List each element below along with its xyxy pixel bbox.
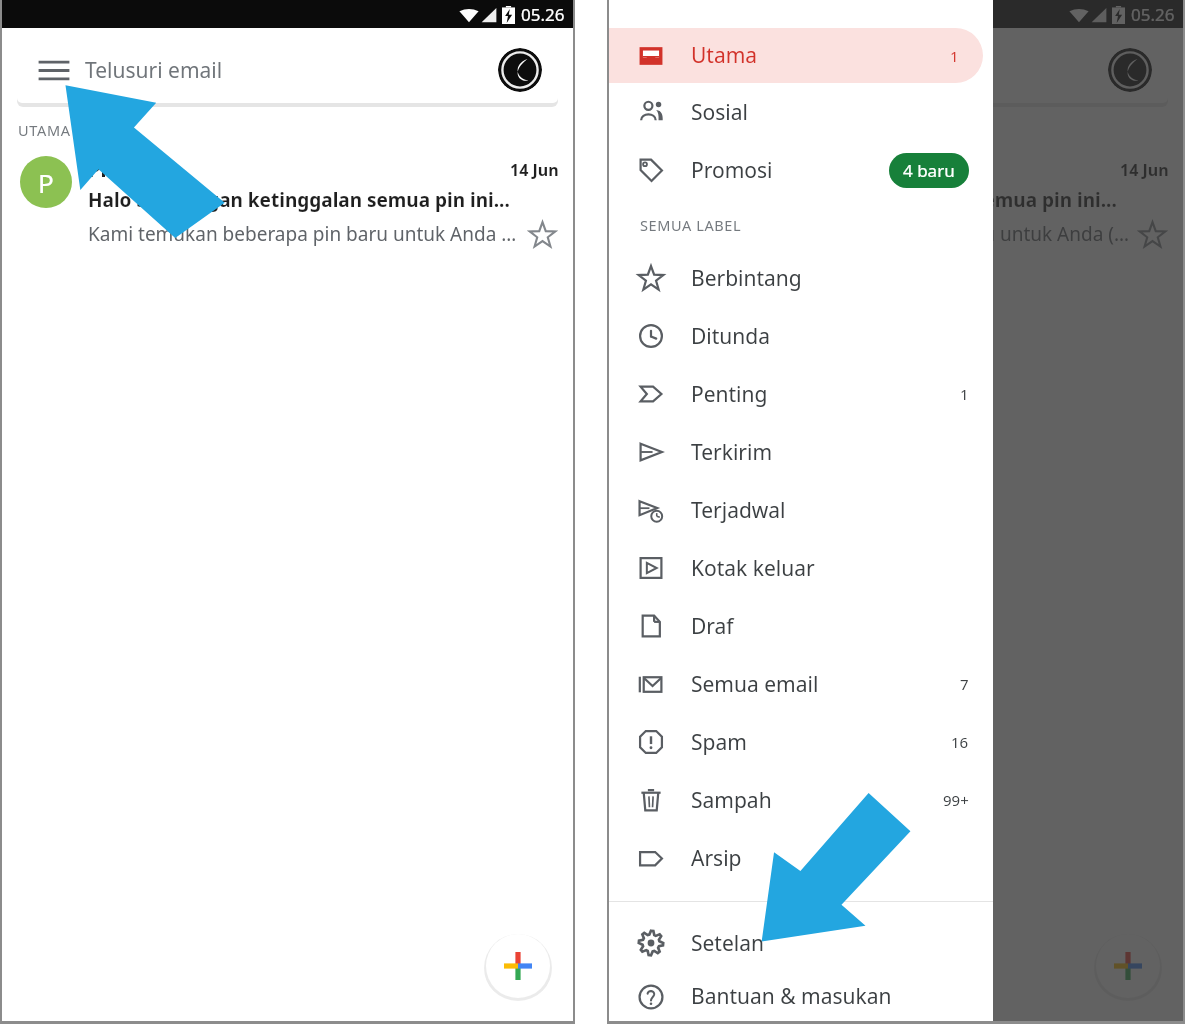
button[interactable]: Promosi: [609, 141, 993, 199]
staticText: Sampah: [691, 786, 943, 815]
button[interactable]: Draf: [609, 597, 993, 655]
staticText: Setelan: [691, 929, 969, 958]
staticText: Kotak keluar: [691, 554, 969, 583]
button[interactable]: Account: [1108, 48, 1152, 92]
button[interactable]: Spam: [609, 713, 993, 771]
staticText: Penting: [691, 380, 960, 409]
staticText: Kami temukan beberapa pin baru untuk And…: [695, 221, 1131, 247]
button[interactable]: P: [609, 152, 1183, 259]
button[interactable]: Arsip: [609, 829, 993, 887]
button[interactable]: Account: [498, 48, 542, 92]
staticText: Promosi: [691, 156, 889, 185]
button[interactable]: Utama: [609, 28, 983, 83]
button[interactable]: Star: [525, 217, 559, 251]
staticText: 14 Jun: [1120, 159, 1169, 181]
staticText: P: [38, 165, 54, 200]
staticText: Ditunda: [691, 322, 969, 351]
staticText: Halo SIA, jangan ketinggalan semua pin i…: [695, 187, 1117, 213]
button[interactable]: Open navigation drawer: [624, 37, 1168, 103]
button[interactable]: Open navigation drawer: [31, 47, 77, 93]
staticText: Telusuri email: [692, 56, 1108, 85]
button[interactable]: Penting: [609, 365, 993, 423]
button[interactable]: Bantuan & masukan: [609, 972, 993, 1021]
staticText: P: [645, 165, 661, 200]
staticText: Telusuri email: [85, 56, 498, 85]
staticText: 1: [950, 46, 959, 66]
button[interactable]: Compose: [1093, 931, 1163, 1001]
button[interactable]: Sosial: [609, 83, 993, 141]
button[interactable]: Terjadwal: [609, 481, 993, 539]
staticText: 7: [960, 674, 969, 694]
staticText: 05.26: [521, 3, 565, 26]
button[interactable]: Setelan: [609, 914, 993, 972]
staticText: Halo SIA, jangan ketinggalan semua pin i…: [88, 187, 510, 213]
button[interactable]: Terkirim: [609, 423, 993, 481]
button[interactable]: Compose: [483, 931, 553, 1001]
button[interactable]: Open navigation drawer: [638, 47, 684, 93]
staticText: Spam: [691, 728, 951, 757]
button[interactable]: Semua email: [609, 655, 993, 713]
staticText: Kami temukan beberapa pin baru untuk And…: [88, 221, 521, 247]
staticText: 4 baru: [903, 159, 955, 182]
staticText: Sosial: [691, 98, 969, 127]
staticText: 14 Jun: [510, 159, 559, 181]
staticText: Bantuan & masukan: [691, 982, 969, 1011]
button[interactable]: P: [2, 152, 573, 259]
staticText: Semua email: [691, 670, 960, 699]
staticText: SEMUA LABEL: [640, 215, 742, 235]
button[interactable]: Berbintang: [609, 249, 993, 307]
staticText: 1: [960, 384, 969, 404]
staticText: Utama: [691, 41, 950, 70]
staticText: Terjadwal: [691, 496, 969, 525]
button[interactable]: Ditunda: [609, 307, 993, 365]
staticText: Berbintang: [691, 264, 969, 293]
staticText: 05.26: [1131, 3, 1175, 26]
staticText: UTAMA: [18, 120, 71, 140]
staticText: 99+: [943, 790, 969, 810]
staticText: Terkirim: [691, 438, 969, 467]
staticText: Arsip: [691, 844, 969, 873]
staticText: 16: [951, 732, 969, 752]
staticText: Pinterest: [88, 156, 510, 183]
button[interactable]: Star: [1135, 217, 1169, 251]
staticText: Draf: [691, 612, 969, 641]
button[interactable]: Kotak keluar: [609, 539, 993, 597]
button[interactable]: Open navigation drawer: [17, 37, 558, 103]
staticText: Pinterest: [695, 156, 1120, 183]
staticText: UTAMA: [625, 120, 678, 140]
button[interactable]: Sampah: [609, 771, 993, 829]
